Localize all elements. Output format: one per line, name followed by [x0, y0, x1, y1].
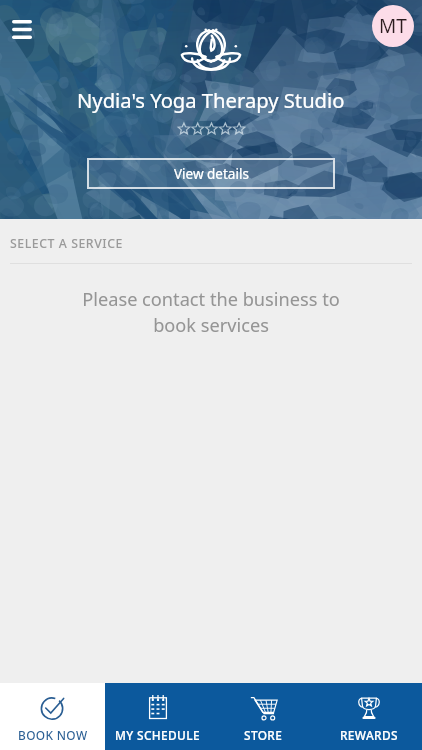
button[interactable]: Menu: [2, 9, 42, 49]
staticText: SELECT A SERVICE: [10, 235, 123, 252]
button[interactable]: STORE: [210, 683, 316, 750]
staticText: View details: [174, 165, 249, 183]
button[interactable]: BOOK NOW: [0, 683, 105, 750]
button[interactable]: REWARDS: [316, 683, 422, 750]
staticText: BOOK NOW: [18, 727, 88, 743]
staticText: MY SCHEDULE: [115, 727, 200, 743]
staticText: MT: [379, 13, 407, 39]
button[interactable]: MT: [372, 5, 414, 47]
button[interactable]: View details: [87, 158, 335, 189]
staticText: Please contact the business to book serv…: [62, 287, 360, 337]
staticText: STORE: [244, 727, 283, 743]
staticText: REWARDS: [340, 727, 398, 743]
button[interactable]: MY SCHEDULE: [105, 683, 210, 750]
staticText: Nydia's Yoga Therapy Studio: [77, 86, 345, 114]
